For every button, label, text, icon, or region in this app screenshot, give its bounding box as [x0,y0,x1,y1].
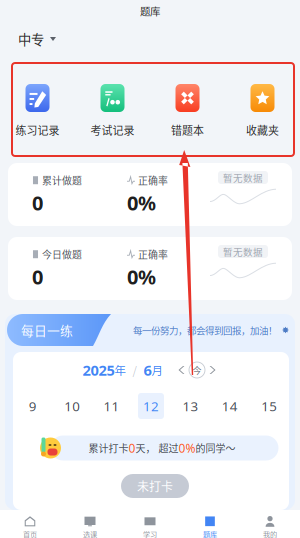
staticText: 正确率 [138,247,168,261]
staticText: 的同学～ [195,441,235,455]
button[interactable]: 考试记录 [75,56,150,163]
staticText: 0 [128,440,135,456]
staticText: 月 [151,362,162,378]
staticText: 收藏夹 [246,122,279,138]
staticText: 年 [114,362,125,378]
staticText: 13 [182,397,198,415]
staticText: 累计打卡 [88,441,128,455]
staticText: 题库 [203,529,217,538]
button[interactable]: 未打卡 [121,474,189,498]
staticText: 天， [135,441,155,455]
staticText: 0 [32,189,43,216]
staticText: 考试记录 [90,122,134,138]
staticText: 中专 [18,29,44,49]
staticText: 今日做题 [42,247,82,261]
staticText: 今 [192,363,201,376]
button[interactable]: 下个月 [207,362,219,378]
staticText: 首页 [23,529,37,538]
button[interactable]: 11 [92,393,131,419]
staticText: 2025 [82,360,114,380]
staticText: 0% [127,189,156,216]
staticText: 暂无数据 [223,170,263,184]
staticText: 正确率 [138,173,168,187]
staticText: 10 [64,397,80,415]
staticText: 11 [104,397,120,415]
staticText: 6 [143,360,151,380]
button[interactable]: 15 [249,393,289,419]
button[interactable]: 今天 [189,362,205,378]
staticText: 12 [143,397,159,415]
staticText: / [132,362,136,378]
button[interactable]: 12 [131,393,171,419]
button[interactable]: 选课 [60,510,120,538]
staticText: 0% [127,263,156,290]
button[interactable]: 题库 [180,510,240,538]
staticText: 暂无数据 [223,244,263,258]
staticText: 学习 [143,529,157,538]
staticText: 每一份努力，都会得到回报，加油！ [133,323,277,337]
staticText: 0% [178,440,195,456]
staticText: 累计做题 [42,173,82,187]
button[interactable]: 首页 [0,510,60,538]
button[interactable]: 错题本 [150,56,225,163]
staticText: 15 [261,397,277,415]
staticText: 每日一练 [21,321,73,339]
button[interactable]: 学习 [120,510,180,538]
button[interactable]: 上个月 [174,362,187,378]
staticText: 我的 [263,529,277,538]
button[interactable]: 13 [171,393,210,419]
staticText: 0 [32,263,43,290]
button[interactable]: 10 [52,393,92,419]
staticText: 9 [29,397,37,415]
staticText: 错题本 [171,122,204,138]
staticText: 未打卡 [137,477,173,495]
button[interactable]: 中专 [0,22,300,56]
staticText: 题库 [140,3,160,19]
button[interactable]: 14 [210,393,249,419]
staticText: 练习记录 [15,122,59,138]
staticText: 超过 [158,441,178,455]
staticText: 选课 [83,529,97,538]
button[interactable]: 收藏夹 [225,56,300,163]
button[interactable]: 练习记录 [0,56,75,163]
button[interactable]: 9 [13,393,52,419]
button[interactable]: 我的 [240,510,300,538]
staticText: 14 [222,397,238,415]
